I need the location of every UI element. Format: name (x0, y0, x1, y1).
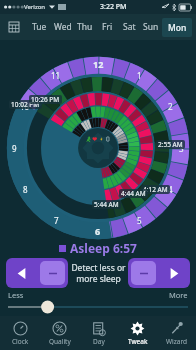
button[interactable]: Sat (118, 14, 140, 40)
staticText: Quality (49, 337, 71, 346)
staticText: 5:44 AM (94, 200, 119, 209)
staticText: Sat (123, 21, 136, 33)
staticText: 1 (137, 70, 142, 81)
button[interactable]: Sun (140, 14, 162, 40)
staticText: Clock (12, 337, 29, 346)
button[interactable]: Clock (0, 316, 40, 350)
staticText: 4:12 AM (143, 185, 168, 194)
staticText: 2 (168, 101, 173, 112)
button[interactable]: Fri (96, 14, 118, 40)
button[interactable]: Calendar (0, 14, 28, 40)
staticText: Sun (143, 21, 159, 33)
staticText: 3 (179, 143, 184, 154)
button[interactable]: Day (79, 316, 118, 350)
staticText: 10:02 PM (11, 100, 40, 109)
button[interactable]: Tue (28, 14, 51, 40)
staticText: Mon (168, 22, 187, 34)
staticText: More (169, 290, 188, 300)
staticText: 10:26 PM (31, 95, 60, 104)
staticText: 4:44 AM (121, 189, 146, 198)
staticText: Tue (32, 21, 47, 33)
staticText: Verizon (24, 3, 46, 11)
staticText: 8 (23, 184, 28, 195)
staticText: 9 (12, 143, 17, 154)
staticText: 6 (95, 225, 101, 237)
button[interactable]: Thu (74, 14, 96, 40)
staticText: 4 (168, 184, 173, 195)
staticText: Fri (102, 21, 113, 33)
button[interactable]: Mon (162, 18, 192, 37)
staticText: 10 (20, 101, 30, 112)
staticText: 5 (137, 215, 142, 226)
staticText: Less (8, 290, 24, 300)
staticText: Tweak (128, 337, 148, 346)
button[interactable]: Sensitivity slider (8, 300, 188, 314)
staticText: Wizard (166, 337, 187, 346)
button[interactable]: Detect less sleep (6, 258, 68, 288)
staticText: Day (93, 337, 105, 346)
button[interactable]: Detect more sleep (128, 258, 190, 288)
button[interactable]: Quality (40, 316, 79, 350)
staticText: 12 (93, 58, 104, 70)
staticText: Wed (54, 21, 72, 33)
staticText: Asleep 6:57 (70, 240, 137, 256)
staticText: 3:22 PM (100, 2, 127, 12)
button[interactable]: Wed (51, 14, 74, 40)
staticText: 2:55 AM (158, 140, 183, 149)
staticText: 7 (54, 215, 59, 226)
button[interactable]: Wizard (157, 316, 196, 350)
button[interactable]: Tweak (118, 316, 157, 350)
staticText: 11 (51, 70, 61, 81)
staticText: Detect less or more sleep (71, 262, 126, 284)
staticText: Thu (77, 21, 93, 33)
